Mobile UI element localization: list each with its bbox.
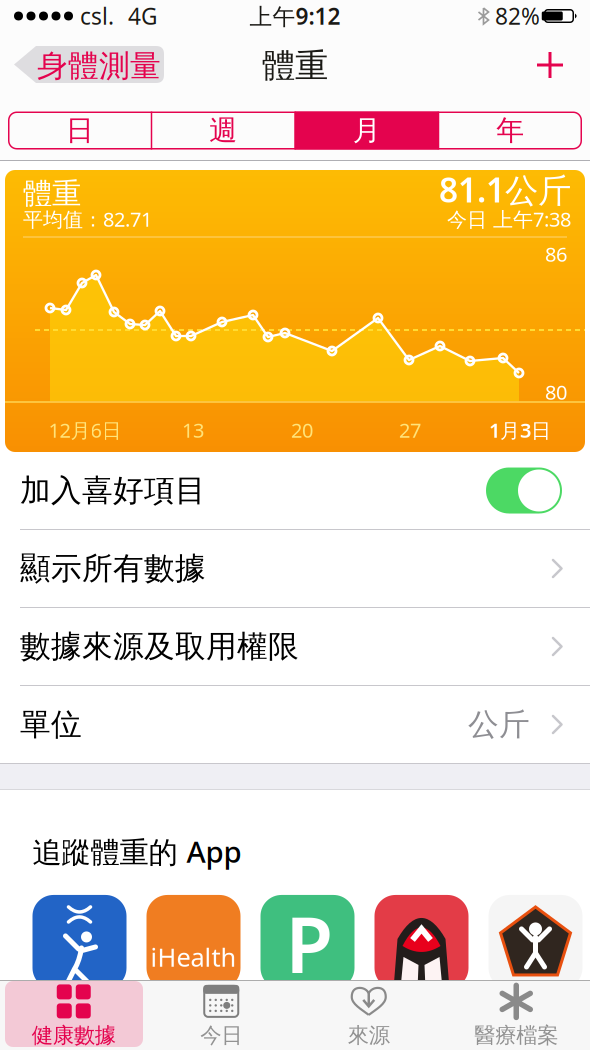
staticText: 今日	[200, 1022, 242, 1049]
staticText: 今日 上午7:38	[447, 206, 571, 232]
button[interactable]: 單位	[0, 686, 590, 763]
staticText: 12月6日	[48, 417, 121, 443]
staticText: 20	[291, 417, 313, 443]
staticText: 81.1公斤	[439, 167, 571, 212]
staticText: 13	[182, 417, 204, 443]
staticText: 上午9:12	[249, 1, 340, 31]
button[interactable]: 日	[8, 111, 151, 149]
button[interactable]	[488, 895, 582, 989]
staticText: 來源	[348, 1022, 390, 1049]
staticText: 顯示所有數據	[20, 550, 206, 587]
staticText: 單位	[20, 706, 82, 743]
staticText: 27	[399, 417, 421, 443]
staticText: P	[285, 892, 333, 994]
staticText: csl.	[80, 1, 114, 31]
button[interactable]: 今日	[147, 983, 295, 1049]
button[interactable]: 數據來源及取用權限	[0, 608, 590, 685]
staticText: 身體測量	[37, 47, 161, 85]
staticText: 追蹤體重的 App	[32, 832, 241, 871]
button[interactable]: 來源	[295, 983, 442, 1049]
staticText: 數據來源及取用權限	[20, 628, 299, 665]
button[interactable]	[32, 895, 126, 989]
button[interactable]	[374, 895, 468, 989]
staticText: 醫療檔案	[474, 1022, 558, 1049]
button[interactable]	[486, 467, 562, 513]
staticText: 體重	[262, 45, 328, 86]
staticText: 加入喜好項目	[20, 472, 206, 509]
button[interactable]: 週	[151, 111, 295, 149]
staticText: 平均值：82.71	[23, 206, 152, 232]
staticText: 86	[545, 241, 567, 267]
staticText: 4G	[128, 1, 158, 31]
button[interactable]: 健康數據	[0, 983, 147, 1049]
staticText: 月	[353, 113, 381, 148]
button[interactable]: iHealth	[146, 895, 240, 989]
staticText: 80	[545, 379, 567, 405]
staticText: iHealth	[150, 940, 236, 974]
button[interactable]	[528, 43, 572, 87]
button[interactable]: P	[260, 895, 354, 989]
button[interactable]: 月	[295, 111, 438, 149]
staticText: 年	[496, 113, 524, 148]
staticText: 日	[66, 113, 94, 148]
button[interactable]: 醫療檔案	[442, 983, 590, 1049]
staticText: 體重	[23, 176, 81, 212]
staticText: 週	[209, 113, 237, 148]
button[interactable]: 顯示所有數據	[0, 530, 590, 607]
staticText: 82%	[495, 1, 540, 31]
button[interactable]: 年	[438, 111, 582, 149]
staticText: 健康數據	[32, 1022, 116, 1049]
staticText: 1月3日	[489, 417, 551, 443]
staticText: 公斤	[468, 706, 530, 743]
button[interactable]: 身體測量	[0, 32, 164, 101]
